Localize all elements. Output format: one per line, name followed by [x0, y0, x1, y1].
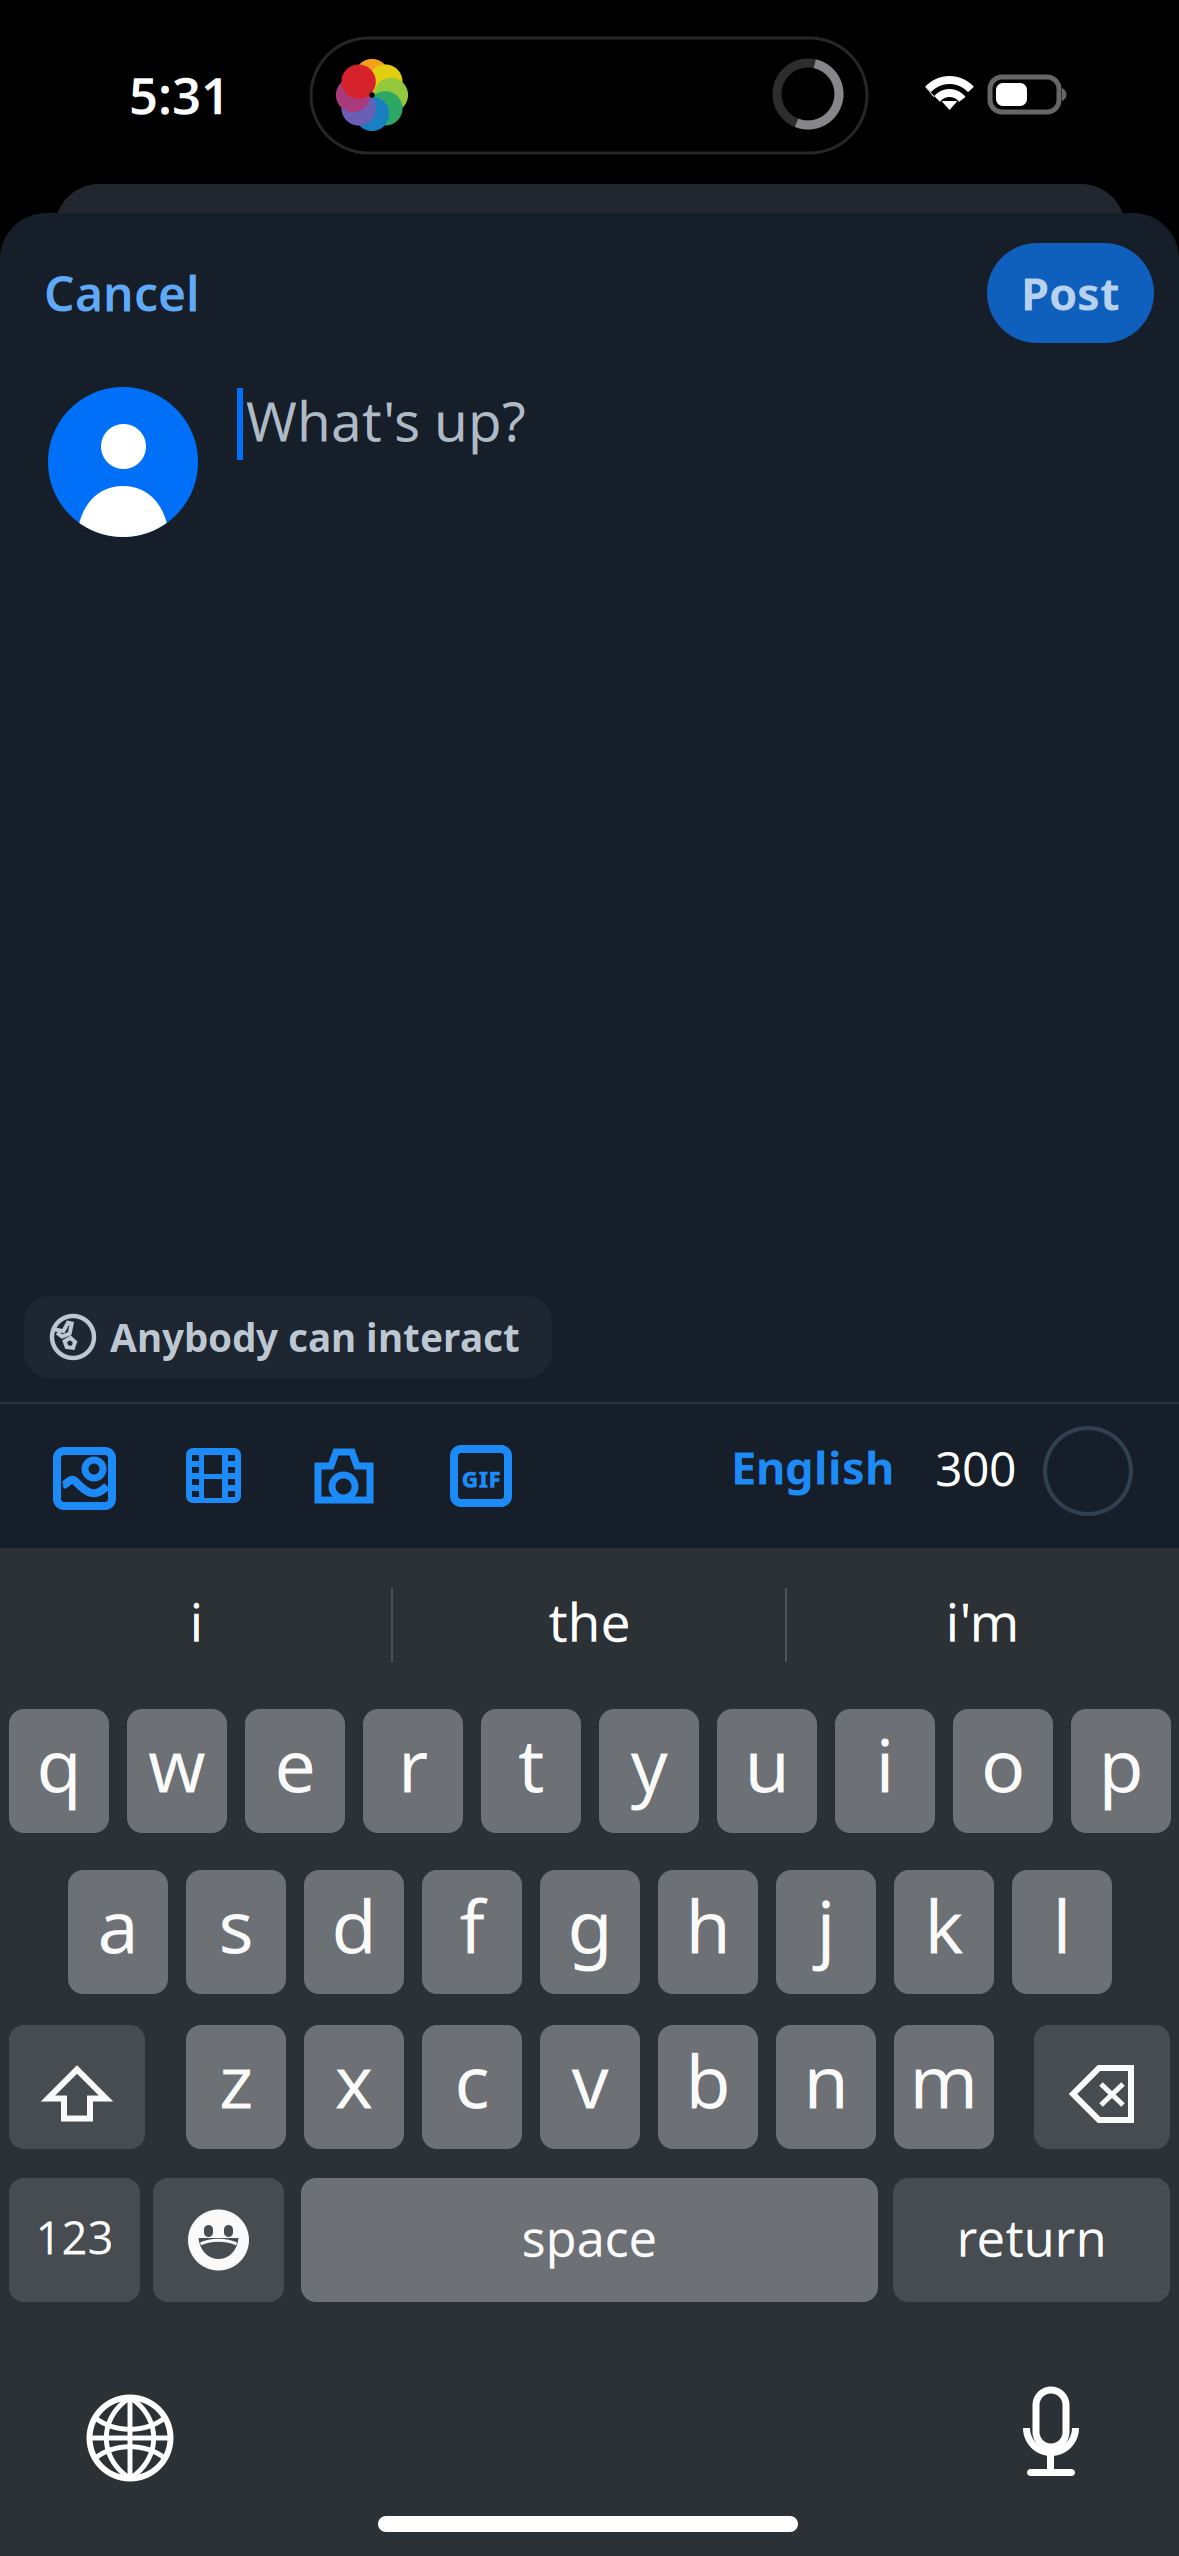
staticText: 300: [935, 1436, 1016, 1500]
staticText: q: [36, 1715, 81, 1813]
staticText: i'm: [945, 1586, 1019, 1656]
button[interactable]: Camera: [314, 1448, 374, 1503]
staticText: GIF: [461, 1464, 500, 1494]
staticText: p: [1098, 1715, 1143, 1813]
staticText: b: [685, 2031, 730, 2129]
button[interactable]: Dictate: [1001, 2383, 1101, 2483]
staticText: Post: [1021, 263, 1120, 323]
staticText: o: [981, 1715, 1025, 1813]
button[interactable]: x: [304, 2025, 404, 2149]
button[interactable]: Backspace: [1034, 2025, 1170, 2149]
button[interactable]: p: [1071, 1709, 1171, 1833]
staticText: k: [924, 1876, 963, 1974]
staticText: h: [685, 1876, 730, 1974]
button[interactable]: Post: [987, 243, 1154, 343]
staticText: y: [630, 1715, 667, 1813]
button[interactable]: g: [540, 1870, 640, 1994]
staticText: the: [548, 1586, 630, 1656]
button[interactable]: l: [1012, 1870, 1112, 1994]
staticText: v: [571, 2031, 608, 2129]
staticText: u: [744, 1715, 789, 1813]
button[interactable]: space: [301, 2178, 878, 2302]
staticText: t: [518, 1715, 544, 1813]
button[interactable]: j: [776, 1870, 876, 1994]
button[interactable]: d: [304, 1870, 404, 1994]
button[interactable]: n: [776, 2025, 876, 2149]
button[interactable]: Add photo: [57, 1451, 112, 1506]
staticText: z: [219, 2031, 253, 2129]
staticText: l: [1052, 1876, 1071, 1974]
staticText: w: [148, 1715, 206, 1813]
button[interactable]: return: [893, 2178, 1170, 2302]
button[interactable]: v: [540, 2025, 640, 2149]
button[interactable]: English: [731, 1432, 931, 1502]
button[interactable]: s: [186, 1870, 286, 1994]
button[interactable]: o: [953, 1709, 1053, 1833]
staticText: x: [334, 2031, 373, 2129]
staticText: c: [454, 2031, 489, 2129]
staticText: return: [956, 2203, 1106, 2271]
staticText: f: [459, 1876, 484, 1974]
button[interactable]: m: [894, 2025, 994, 2149]
staticText: Cancel: [44, 261, 200, 325]
staticText: j: [816, 1876, 835, 1974]
button[interactable]: Shift: [9, 2025, 145, 2149]
button[interactable]: z: [186, 2025, 286, 2149]
button[interactable]: i'm: [786, 1566, 1179, 1676]
staticText: space: [521, 2203, 657, 2271]
button[interactable]: Emoji keyboard: [153, 2178, 284, 2302]
button[interactable]: t: [481, 1709, 581, 1833]
button[interactable]: u: [717, 1709, 817, 1833]
button[interactable]: y: [599, 1709, 699, 1833]
button[interactable]: b: [658, 2025, 758, 2149]
staticText: m: [909, 2031, 978, 2129]
button[interactable]: i: [835, 1709, 935, 1833]
button[interactable]: Switch keyboard: [80, 2388, 180, 2488]
button[interactable]: c: [422, 2025, 522, 2149]
button[interactable]: Cancel: [44, 249, 214, 337]
staticText: English: [731, 1437, 894, 1497]
button[interactable]: i: [0, 1566, 393, 1676]
button[interactable]: w: [127, 1709, 227, 1833]
button[interactable]: h: [658, 1870, 758, 1994]
staticText: e: [274, 1715, 315, 1813]
staticText: r: [398, 1715, 428, 1813]
button[interactable]: k: [894, 1870, 994, 1994]
staticText: 123: [35, 2207, 113, 2267]
button[interactable]: Add GIF: [454, 1449, 508, 1503]
staticText: a: [97, 1876, 138, 1974]
button[interactable]: r: [363, 1709, 463, 1833]
staticText: i: [875, 1715, 894, 1813]
button[interactable]: f: [422, 1870, 522, 1994]
staticText: d: [331, 1876, 376, 1974]
staticText: i: [189, 1586, 203, 1656]
staticText: 5:31: [129, 61, 230, 128]
button[interactable]: e: [245, 1709, 345, 1833]
button[interactable]: 123: [9, 2178, 140, 2302]
button[interactable]: q: [9, 1709, 109, 1833]
staticText: Anybody can interact: [110, 1311, 520, 1363]
button[interactable]: Add video: [186, 1448, 241, 1503]
staticText: What's up?: [246, 384, 526, 457]
button[interactable]: the: [393, 1566, 786, 1676]
staticText: s: [218, 1876, 253, 1974]
staticText: g: [567, 1876, 612, 1974]
button[interactable]: a: [68, 1870, 168, 1994]
button[interactable]: Anybody can interact: [24, 1296, 552, 1378]
staticText: n: [803, 2031, 848, 2129]
